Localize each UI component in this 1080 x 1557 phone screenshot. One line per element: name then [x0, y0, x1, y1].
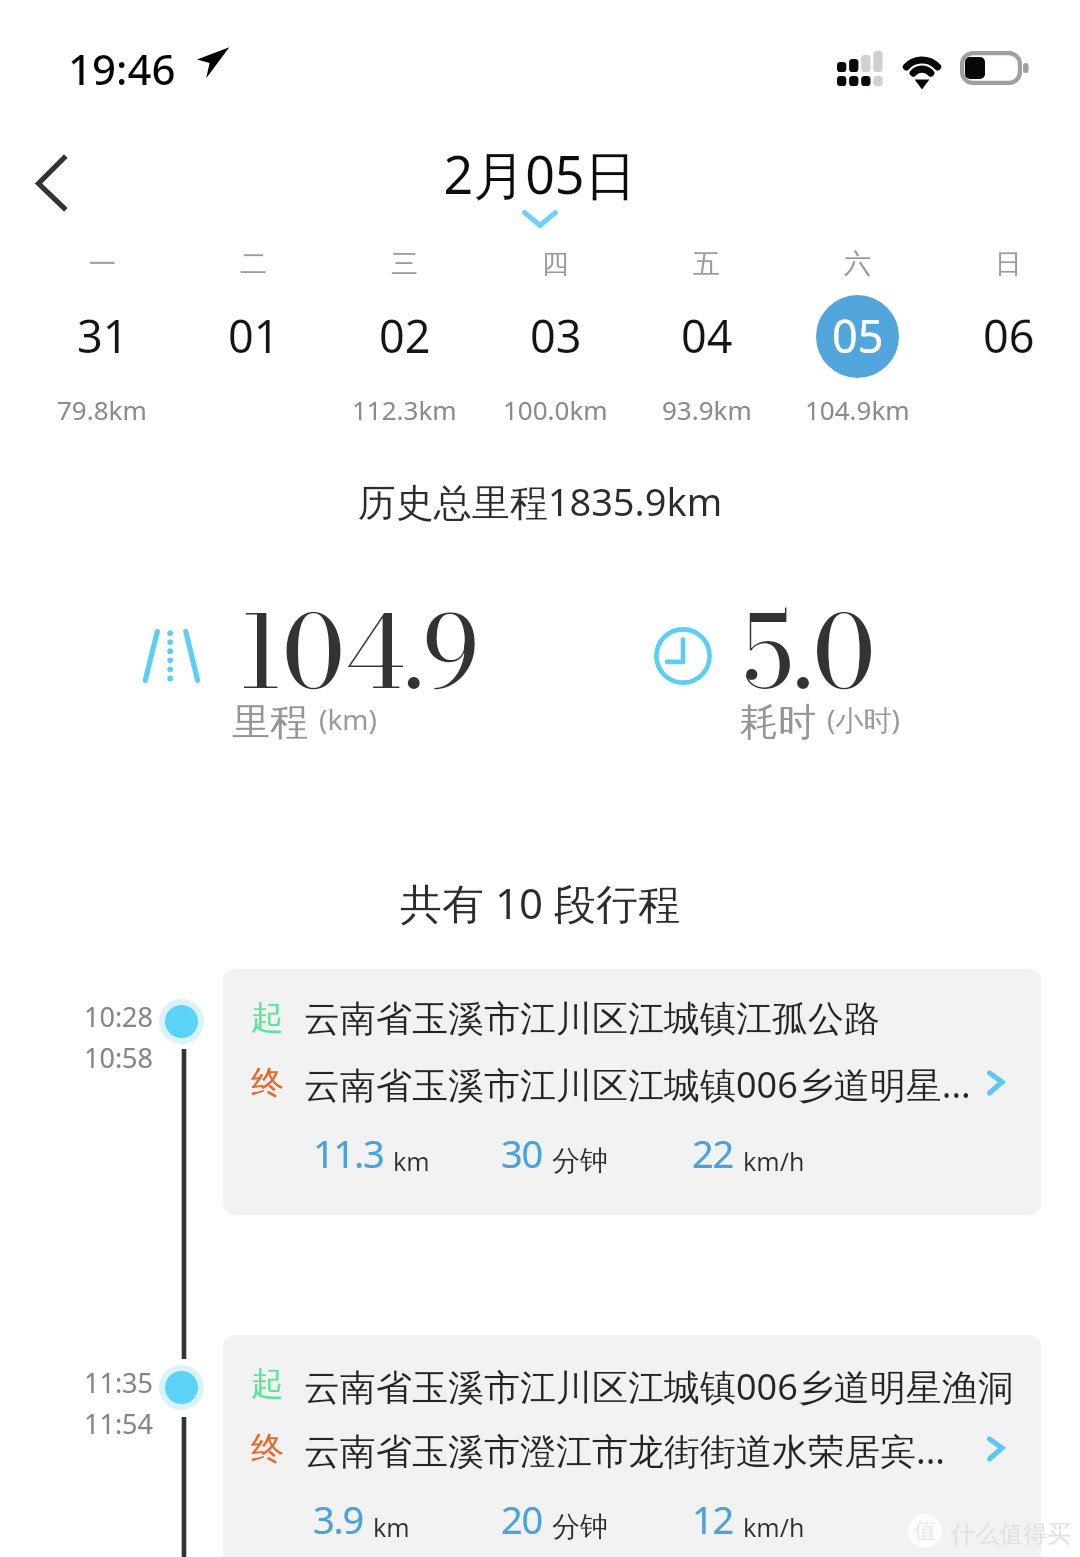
- staticText: 100.0km: [503, 392, 608, 427]
- staticText: 历史总里程1835.9km: [0, 475, 1080, 527]
- staticText: 里程: [232, 698, 308, 746]
- staticText: 值: [914, 1517, 936, 1545]
- staticText: 22: [692, 1127, 734, 1179]
- staticText: 什么值得买: [951, 1519, 1071, 1549]
- button[interactable]: 五: [631, 247, 782, 427]
- button[interactable]: 二: [178, 247, 329, 427]
- staticText: 分钟: [552, 1509, 608, 1544]
- staticText: 11:54: [84, 1405, 154, 1442]
- staticText: km: [393, 1144, 430, 1178]
- staticText: 起: [251, 1363, 284, 1405]
- staticText: 终: [251, 1062, 284, 1104]
- staticText: 112.3km: [352, 392, 457, 427]
- staticText: 云南省玉溪市江川区江城镇006乡道明星...: [304, 1060, 971, 1109]
- staticText: 104.9km: [805, 392, 910, 427]
- staticText: 起: [251, 997, 284, 1039]
- staticText: 79.8km: [57, 392, 147, 427]
- button[interactable]: Back: [0, 120, 104, 230]
- button[interactable]: 一: [26, 247, 178, 427]
- staticText: 93.9km: [662, 392, 752, 427]
- staticText: 五: [693, 247, 720, 281]
- staticText: (小时): [827, 700, 900, 738]
- staticText: 30: [501, 1127, 543, 1179]
- button[interactable]: 四: [480, 247, 631, 427]
- staticText: 2月05日: [0, 138, 1080, 209]
- staticText: km/h: [743, 1510, 805, 1544]
- staticText: 5.0: [743, 575, 875, 728]
- staticText: (km): [319, 700, 377, 738]
- staticText: 云南省玉溪市澄江市龙街街道水荣居宾...: [304, 1426, 945, 1475]
- staticText: 04: [681, 305, 733, 366]
- staticText: km: [373, 1510, 410, 1544]
- staticText: 云南省玉溪市江川区江城镇江孤公路: [304, 996, 880, 1041]
- button[interactable]: Details: [978, 1059, 1020, 1103]
- staticText: 11.3: [313, 1127, 384, 1179]
- staticText: 云南省玉溪市江川区江城镇006乡道明星渔洞: [304, 1362, 1014, 1411]
- staticText: 01: [228, 305, 280, 366]
- staticText: 终: [251, 1428, 284, 1470]
- staticText: 10:28: [84, 998, 154, 1035]
- staticText: 31: [77, 305, 129, 366]
- button[interactable]: 六: [782, 247, 933, 427]
- staticText: 03: [530, 305, 582, 366]
- staticText: 日: [995, 247, 1022, 281]
- staticText: 二: [240, 247, 267, 281]
- staticText: 06: [983, 305, 1035, 366]
- staticText: 分钟: [552, 1143, 608, 1178]
- staticText: 六: [844, 247, 871, 281]
- button[interactable]: 三: [329, 247, 480, 427]
- staticText: 11:35: [84, 1364, 154, 1401]
- button[interactable]: 起: [223, 1335, 1041, 1557]
- button[interactable]: Details: [978, 1425, 1020, 1469]
- staticText: 耗时: [740, 698, 816, 746]
- button[interactable]: 日: [933, 247, 1080, 427]
- staticText: 3.9: [313, 1493, 364, 1545]
- staticText: 10:58: [84, 1039, 154, 1076]
- button[interactable]: 起: [223, 969, 1041, 1215]
- staticText: 104.9: [239, 575, 480, 728]
- staticText: km/h: [743, 1144, 805, 1178]
- staticText: 12: [692, 1493, 734, 1545]
- staticText: 19:46: [68, 40, 176, 97]
- staticText: 三: [391, 247, 418, 281]
- staticText: 共有 10 段行程: [0, 874, 1080, 931]
- staticText: 05: [832, 305, 884, 366]
- staticText: 02: [379, 305, 431, 366]
- staticText: 一: [89, 247, 116, 281]
- staticText: 四: [542, 247, 569, 281]
- staticText: 20: [501, 1493, 543, 1545]
